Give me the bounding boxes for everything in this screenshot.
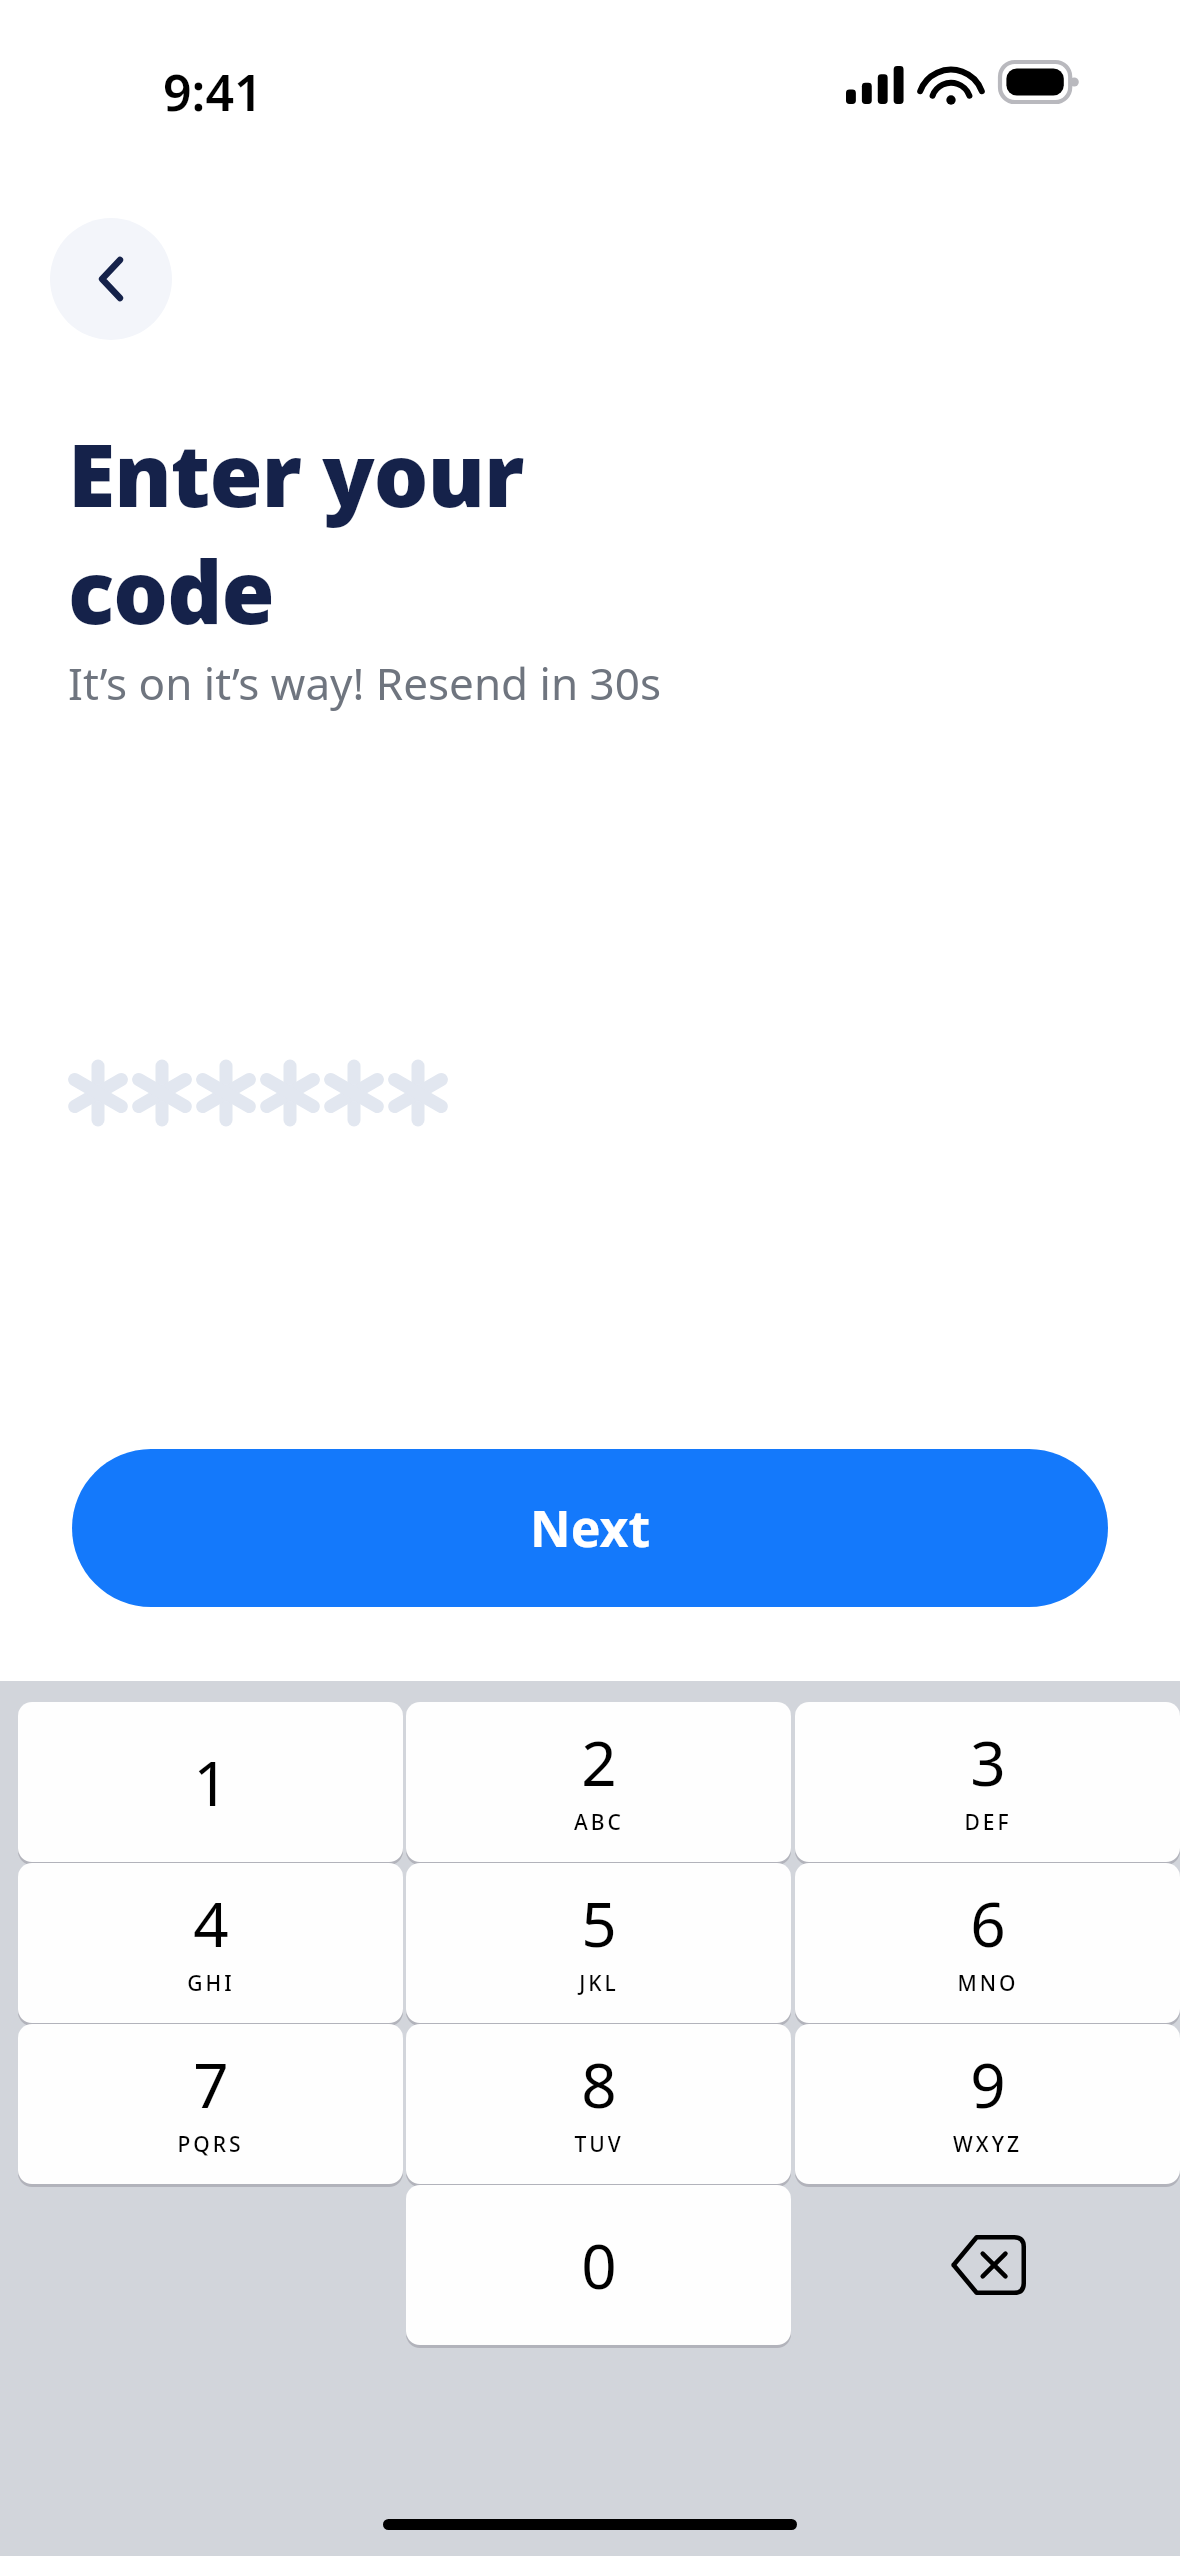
staticText: Next [530,1494,651,1562]
staticText: It’s on it’s way! Resend in 30s [68,653,661,713]
staticText: 4 [193,1881,229,1965]
staticText: 9 [970,2042,1006,2126]
button[interactable]: 3 [795,1702,1180,1862]
button[interactable]: 9 [795,2024,1180,2184]
staticText: PQRS [177,2130,244,2159]
staticText: 3 [970,1720,1006,1804]
button[interactable]: 0 [406,2185,791,2345]
button[interactable]: Backspace [795,2185,1180,2345]
button[interactable] [66,1038,450,1148]
staticText: 2 [581,1720,617,1804]
staticText: GHI [187,1969,235,1998]
staticText: Enter your [68,415,524,532]
staticText: JKL [579,1969,619,1998]
staticText: 0 [581,2223,617,2307]
staticText: MNO [957,1969,1019,1998]
staticText: TUV [574,2130,624,2159]
staticText: 9:41 [163,58,263,126]
button[interactable]: Back [50,218,172,340]
button[interactable]: 5 [406,1863,791,2023]
button[interactable]: 8 [406,2024,791,2184]
button[interactable]: 4 [18,1863,403,2023]
button[interactable]: 2 [406,1702,791,1862]
staticText: 8 [581,2042,617,2126]
staticText: 5 [581,1881,617,1965]
button[interactable]: 1 [18,1702,403,1862]
staticText: 6 [970,1881,1006,1965]
button[interactable]: 6 [795,1863,1180,2023]
staticText: 7 [193,2042,229,2126]
staticText: code [68,532,274,649]
staticText: ABC [574,1808,624,1837]
button[interactable]: 7 [18,2024,403,2184]
staticText: 1 [193,1740,229,1824]
staticText: DEF [964,1808,1012,1837]
button[interactable]: Next [72,1449,1108,1607]
staticText: WXYZ [953,2130,1022,2159]
